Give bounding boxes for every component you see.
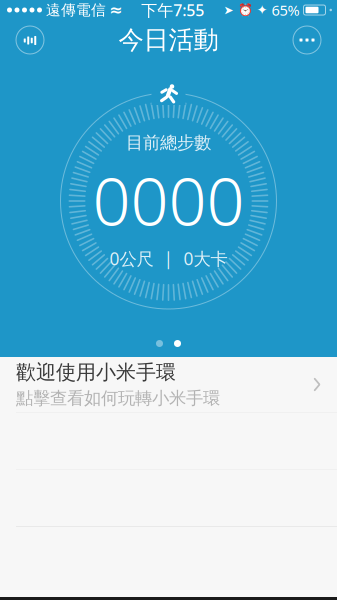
staticText: 歡迎使用小米手環 [16,360,176,385]
staticText: 0000 [92,155,244,244]
staticText: ⏰ [237,3,252,17]
staticText: 下午7:55 [141,0,204,21]
staticText: 點擊查看如何玩轉小米手環 [16,388,220,409]
button[interactable]: 歡迎使用小米手環 [0,357,337,412]
button[interactable]: 更多 [285,20,329,60]
staticText: 今日活動 [118,24,218,55]
staticText: 目前總步數 [126,132,211,153]
staticText: ✦ [256,2,267,17]
staticText: 遠傳電信 [46,1,106,19]
button[interactable]: 統計 [8,20,52,60]
staticText: ➤ [223,3,233,17]
staticText: ≈ [109,1,122,19]
staticText: 0公尺 | 0大卡 [109,247,227,270]
staticText: 65% [271,0,299,20]
